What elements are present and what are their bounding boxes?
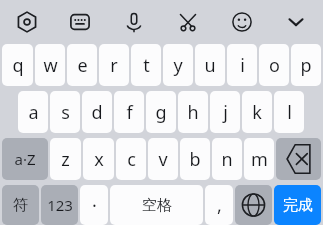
button[interactable]: f xyxy=(114,91,144,133)
staticText: , xyxy=(217,193,222,218)
staticText: 空格 xyxy=(142,196,172,215)
staticText: k xyxy=(252,100,262,125)
button[interactable]: a·Z xyxy=(2,138,48,180)
button[interactable]: Hide keyboard xyxy=(269,0,323,44)
staticText: 123 xyxy=(47,195,73,215)
staticText: a xyxy=(28,100,39,125)
button[interactable]: r xyxy=(99,44,129,86)
staticText: f xyxy=(126,100,133,125)
button[interactable]: 符 xyxy=(2,185,39,225)
button[interactable]: d xyxy=(82,91,112,133)
button[interactable]: Emoji xyxy=(215,0,269,44)
button[interactable]: b xyxy=(180,138,210,180)
button[interactable]: z xyxy=(50,138,81,180)
staticText: w xyxy=(43,53,58,78)
button[interactable]: Cut xyxy=(161,0,215,44)
button[interactable]: Switch language xyxy=(235,185,272,225)
button[interactable]: s xyxy=(50,91,80,133)
staticText: 符 xyxy=(13,196,28,215)
button[interactable]: · xyxy=(80,185,108,225)
staticText: · xyxy=(92,193,97,218)
button[interactable]: k xyxy=(242,91,272,133)
staticText: t xyxy=(143,53,150,78)
button[interactable]: q xyxy=(2,44,33,86)
staticText: v xyxy=(158,147,168,172)
button[interactable]: p xyxy=(291,44,321,86)
staticText: o xyxy=(269,53,280,78)
staticText: g xyxy=(155,100,167,125)
staticText: c xyxy=(127,147,136,172)
staticText: m xyxy=(251,147,268,172)
staticText: r xyxy=(110,53,118,78)
staticText: x xyxy=(94,147,104,172)
button[interactable]: j xyxy=(210,91,240,133)
button[interactable]: 空格 xyxy=(110,185,203,225)
button[interactable]: c xyxy=(116,138,146,180)
staticText: b xyxy=(189,147,201,172)
staticText: q xyxy=(12,53,24,78)
button[interactable]: l xyxy=(274,91,304,133)
button[interactable]: n xyxy=(212,138,242,180)
button[interactable]: 123 xyxy=(41,185,78,225)
button[interactable]: , xyxy=(205,185,233,225)
staticText: 完成 xyxy=(283,196,313,215)
button[interactable]: t xyxy=(131,44,161,86)
button[interactable]: Voice input xyxy=(107,0,161,44)
staticText: d xyxy=(91,100,103,125)
button[interactable]: m xyxy=(244,138,274,180)
button[interactable]: Settings xyxy=(0,0,53,44)
button[interactable]: Keyboard layout xyxy=(53,0,107,44)
button[interactable]: i xyxy=(227,44,257,86)
staticText: l xyxy=(287,100,292,125)
button[interactable]: e xyxy=(67,44,97,86)
staticText: y xyxy=(173,53,183,78)
staticText: h xyxy=(187,100,199,125)
button[interactable]: v xyxy=(148,138,178,180)
staticText: u xyxy=(204,53,216,78)
button[interactable]: 完成 xyxy=(274,185,321,225)
staticText: j xyxy=(223,100,228,125)
staticText: e xyxy=(77,53,88,78)
staticText: s xyxy=(61,100,70,125)
button[interactable]: w xyxy=(35,44,65,86)
button[interactable]: g xyxy=(146,91,176,133)
button[interactable]: a xyxy=(18,91,48,133)
button[interactable]: o xyxy=(259,44,289,86)
button[interactable]: y xyxy=(163,44,193,86)
button[interactable]: h xyxy=(178,91,208,133)
button[interactable]: x xyxy=(83,138,114,180)
staticText: a·Z xyxy=(14,149,36,169)
staticText: i xyxy=(240,53,245,78)
staticText: z xyxy=(61,147,70,172)
button[interactable]: u xyxy=(195,44,225,86)
button[interactable]: Backspace xyxy=(276,138,321,180)
staticText: n xyxy=(221,147,233,172)
staticText: p xyxy=(300,53,312,78)
